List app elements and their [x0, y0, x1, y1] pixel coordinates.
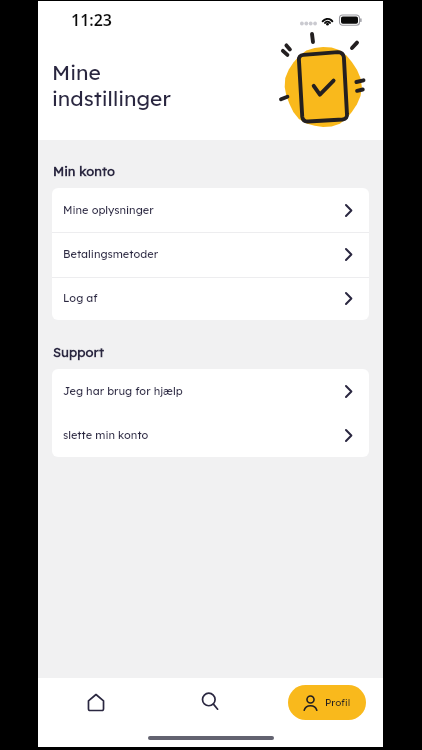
staticText: Mine indstillinger — [52, 59, 171, 111]
staticText: Jeg har brug for hjælp — [63, 384, 183, 398]
button[interactable]: Search — [153, 681, 268, 723]
staticText: 11:23 — [71, 9, 113, 31]
staticText: Mine oplysninger — [63, 203, 154, 217]
button[interactable]: Home — [38, 681, 153, 723]
button[interactable]: Log af — [52, 276, 369, 320]
staticText: Betalingsmetoder — [63, 247, 159, 261]
staticText: Min konto — [53, 163, 115, 179]
staticText: Profil — [325, 696, 351, 709]
button[interactable]: Jeg har brug for hjælp — [52, 369, 369, 413]
button[interactable]: Profil — [288, 685, 366, 720]
button[interactable]: Betalingsmetoder — [52, 232, 369, 276]
button[interactable]: slette min konto — [52, 413, 369, 457]
staticText: Log af — [63, 291, 98, 305]
staticText: Support — [53, 344, 104, 360]
button[interactable]: Mine oplysninger — [52, 188, 369, 232]
staticText: slette min konto — [63, 428, 149, 442]
